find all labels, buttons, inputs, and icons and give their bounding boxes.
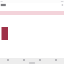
button[interactable]: Tab (16, 59, 32, 61)
button[interactable]: Tab (0, 59, 16, 61)
button[interactable]: Tab (48, 59, 64, 61)
button[interactable]: Tab (32, 59, 48, 61)
